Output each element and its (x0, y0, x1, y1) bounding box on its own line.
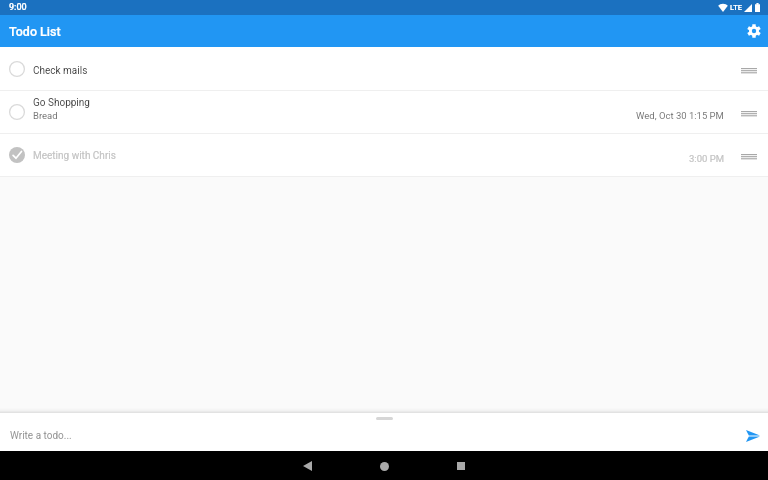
button[interactable]: Toggle Go Shopping (8, 103, 26, 121)
button[interactable]: Send (741, 424, 765, 448)
button[interactable]: Toggle Meeting with Chris (0, 134, 768, 177)
staticText: 9:00 (9, 2, 27, 13)
button[interactable]: Toggle Go Shopping (0, 91, 768, 134)
staticText: Go Shopping (33, 97, 90, 109)
button[interactable]: Reorder (739, 104, 759, 124)
button[interactable]: Settings (742, 19, 766, 43)
staticText: Wed, Oct 30 1:15 PM (636, 110, 724, 121)
button[interactable]: Home (371, 453, 397, 479)
staticText: Check mails (33, 65, 88, 77)
staticText: Todo List (9, 24, 61, 39)
button[interactable]: Reorder (739, 147, 759, 167)
button[interactable]: Write a todo... (0, 423, 716, 449)
staticText: LTE (730, 3, 742, 12)
staticText: Write a todo... (10, 430, 72, 442)
button[interactable]: Toggle Check mails (8, 60, 26, 78)
button[interactable]: Reorder (739, 61, 759, 81)
button[interactable]: Toggle Check mails (0, 48, 768, 91)
staticText: Bread (33, 110, 58, 121)
staticText: 3:00 PM (689, 153, 724, 164)
staticText: Meeting with Chris (33, 150, 116, 162)
button[interactable]: Recents (448, 453, 474, 479)
button[interactable]: Back (294, 453, 320, 479)
button[interactable]: Toggle Meeting with Chris (8, 146, 26, 164)
